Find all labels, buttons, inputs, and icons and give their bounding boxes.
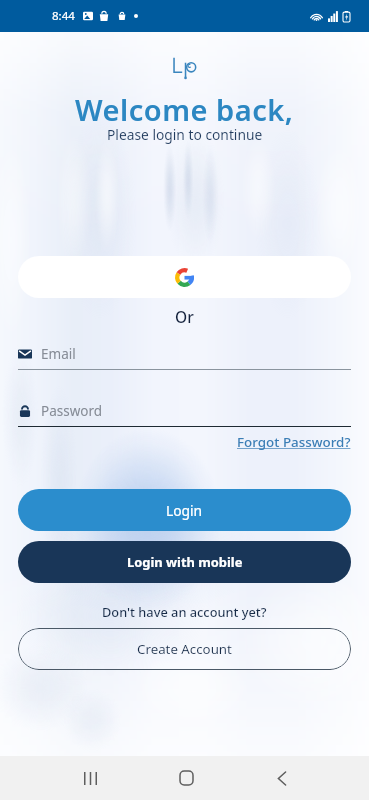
staticText: Or xyxy=(175,306,194,327)
button[interactable]: Recent apps xyxy=(68,756,112,800)
staticText: Create Account xyxy=(137,640,232,658)
button[interactable]: Create Account xyxy=(18,628,351,670)
button[interactable]: Back xyxy=(260,756,304,800)
staticText: Please login to continue xyxy=(107,125,263,144)
staticText: Login xyxy=(166,501,203,520)
staticText: 8:44 xyxy=(52,8,75,24)
staticText: Password xyxy=(41,402,103,420)
staticText: Login with mobile xyxy=(127,553,243,571)
staticText: Don't have an account yet? xyxy=(102,603,267,620)
button[interactable]: Sign in with Google xyxy=(18,256,351,298)
button[interactable]: Login with mobile xyxy=(18,541,351,583)
button[interactable]: Login xyxy=(18,489,351,531)
button[interactable]: Home xyxy=(164,756,208,800)
button[interactable]: Forgot Password? xyxy=(237,433,351,451)
staticText: Welcome back, xyxy=(75,90,294,129)
staticText: Email xyxy=(41,345,76,363)
